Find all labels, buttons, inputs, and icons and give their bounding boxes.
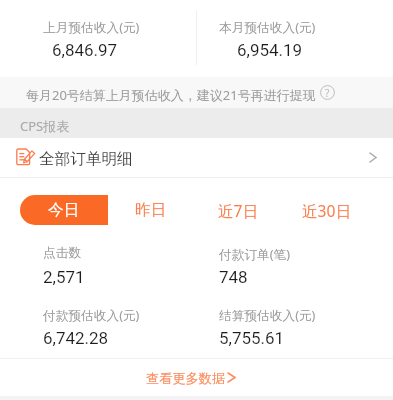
button[interactable]: 今日 xyxy=(20,195,108,225)
staticText: 结算预估收入(元) xyxy=(219,306,316,323)
button[interactable]: 近7日 xyxy=(214,195,262,225)
staticText: 今日 xyxy=(48,200,80,220)
button[interactable]: 上月预估收入(元) xyxy=(0,0,196,77)
staticText: 上月预估收入(元) xyxy=(43,18,140,35)
button[interactable]: 每月20号结算上月预估收入，建议21号再进行提现 xyxy=(0,77,393,108)
staticText: CPS报表 xyxy=(20,117,70,135)
button[interactable]: 付款订单(笔) xyxy=(219,245,291,265)
staticText: 本月预估收入(元) xyxy=(219,18,316,35)
staticText: 昨日 xyxy=(135,200,167,220)
staticText: 748 xyxy=(219,267,248,287)
staticText: 近30日 xyxy=(302,200,352,221)
staticText: 点击数 xyxy=(43,245,82,261)
staticText: 6,742.28 xyxy=(43,328,109,348)
staticText: 查看更多数据 xyxy=(146,370,226,387)
staticText: 6,954.19 xyxy=(237,40,303,60)
button[interactable]: 点击数 xyxy=(43,245,85,265)
staticText: 5,755.61 xyxy=(219,328,285,348)
button[interactable]: 本月预估收入(元) xyxy=(197,0,393,77)
staticText: 全部订单明细 xyxy=(39,149,133,169)
staticText: 付款订单(笔) xyxy=(219,245,291,262)
button[interactable]: 付款预估收入(元) xyxy=(43,306,140,326)
staticText: 近7日 xyxy=(218,200,259,221)
staticText: ? xyxy=(325,86,330,100)
button[interactable]: 昨日 xyxy=(135,195,167,225)
button[interactable]: 近30日 xyxy=(295,195,359,225)
button[interactable]: 全部订单明细 xyxy=(0,138,393,177)
staticText: 每月20号结算上月预估收入，建议21号再进行提现 xyxy=(26,86,316,104)
staticText: 2,571 xyxy=(43,267,85,287)
staticText: 6,846.97 xyxy=(52,40,118,60)
button[interactable]: 查看更多数据 xyxy=(0,359,393,396)
button[interactable]: 结算预估收入(元) xyxy=(219,306,316,326)
staticText: 付款预估收入(元) xyxy=(43,306,140,323)
other: 帮助说明 xyxy=(320,85,335,100)
